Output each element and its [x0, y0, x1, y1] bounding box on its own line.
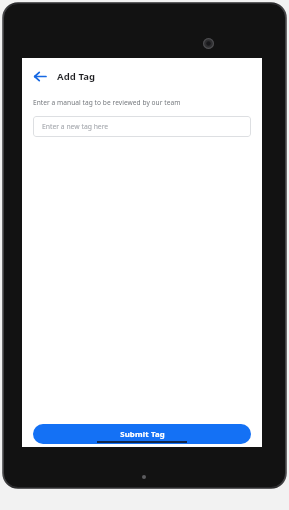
staticText: Enter a new tag here	[42, 122, 109, 131]
button[interactable]: Submit Tag	[33, 424, 251, 444]
staticText: Add Tag	[57, 70, 96, 83]
button[interactable]: Enter a new tag here	[33, 116, 251, 137]
staticText: Submit Tag	[120, 429, 165, 440]
staticText: Enter a manual tag to be reviewed by our…	[33, 98, 181, 107]
button[interactable]: Back	[31, 66, 48, 86]
